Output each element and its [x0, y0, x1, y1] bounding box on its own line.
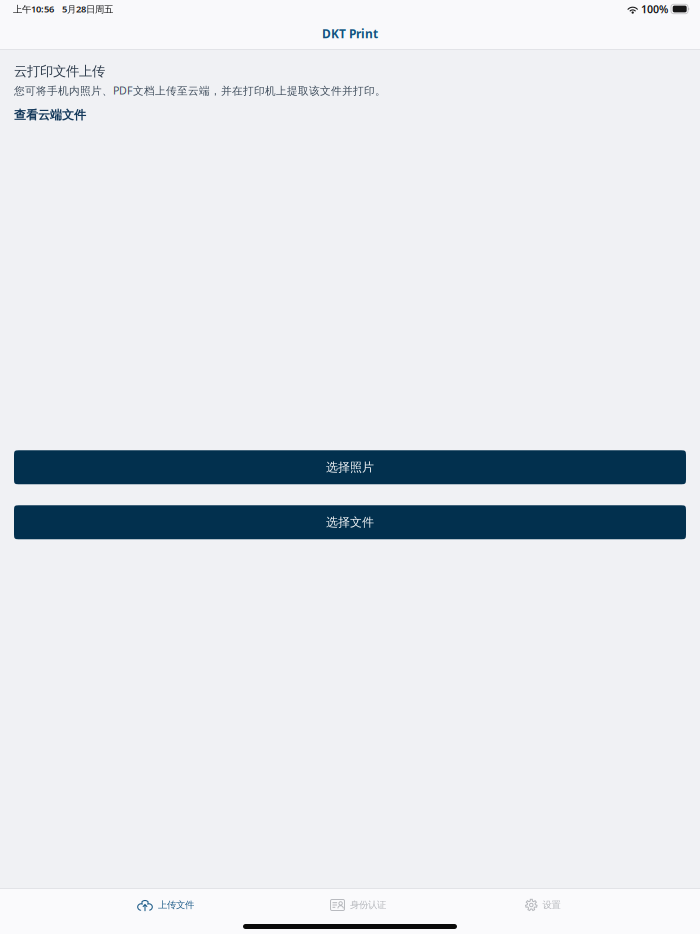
button[interactable]: 设置: [517, 889, 569, 921]
staticText: 上传文件: [158, 899, 194, 911]
staticText: 您可将手机内照片、PDF文档上传至云端，并在打印机上提取该文件并打印。: [14, 83, 386, 98]
staticText: 5月28日周五: [62, 3, 113, 15]
staticText: 100%: [641, 2, 668, 16]
button[interactable]: 身份认证: [322, 889, 394, 921]
button[interactable]: 选择照片: [14, 450, 686, 484]
staticText: 云打印文件上传: [14, 63, 105, 79]
staticText: 设置: [543, 899, 561, 911]
staticText: 身份认证: [350, 899, 386, 911]
button[interactable]: 选择文件: [14, 505, 686, 539]
button[interactable]: 查看云端文件: [14, 97, 86, 122]
button[interactable]: 上传文件: [129, 889, 202, 921]
staticText: 查看云端文件: [14, 107, 86, 122]
staticText: 选择照片: [326, 460, 374, 475]
staticText: 上午10:56: [13, 3, 54, 15]
staticText: 选择文件: [326, 515, 374, 530]
staticText: DKT Print: [322, 25, 378, 41]
